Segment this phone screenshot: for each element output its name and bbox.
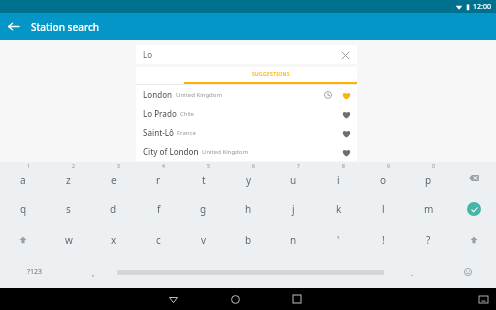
button[interactable]: Lo [136, 45, 357, 64]
button[interactable]: 9 [361, 162, 406, 193]
staticText: d [110, 202, 117, 216]
button[interactable]: v [181, 224, 226, 256]
button[interactable]: Space [117, 266, 384, 278]
button[interactable]: j [271, 193, 316, 224]
button[interactable]: Keyboard [470, 288, 496, 310]
button[interactable]: m [406, 193, 451, 224]
staticText: , [92, 267, 95, 278]
button[interactable]: Backspace [451, 162, 496, 193]
staticText: x [111, 233, 117, 247]
staticText: 9 [387, 163, 390, 170]
button[interactable]: c [136, 224, 181, 256]
staticText: Lo Prado [143, 108, 177, 119]
staticText: 3 [117, 163, 120, 170]
staticText: 4 [162, 163, 165, 170]
button[interactable]: f [136, 193, 181, 224]
staticText: a [20, 173, 26, 187]
button[interactable]: Enter [451, 193, 496, 224]
staticText: 8 [342, 163, 345, 170]
staticText: o [380, 173, 387, 187]
staticText: Saint-Lô [143, 127, 174, 138]
staticText: France [177, 129, 196, 137]
staticText: p [425, 173, 432, 187]
button[interactable]: Favorite [338, 144, 354, 160]
button[interactable]: London [136, 85, 357, 104]
button[interactable]: Clear [336, 46, 354, 64]
button[interactable]: Recents [266, 288, 328, 310]
button[interactable]: k [316, 193, 361, 224]
staticText: z [66, 173, 71, 187]
staticText: s [66, 202, 71, 216]
staticText: b [245, 233, 252, 247]
staticText: ? [426, 233, 431, 247]
staticText: h [245, 202, 252, 216]
button[interactable]: SUGGESTIONS [184, 67, 357, 84]
staticText: j [292, 202, 295, 216]
button[interactable]: 4 [136, 162, 181, 193]
staticText: m [424, 202, 434, 216]
button[interactable]: 5 [181, 162, 226, 193]
button[interactable]: City of London [136, 142, 357, 161]
staticText: y [246, 173, 252, 187]
button[interactable]: Back [142, 288, 204, 310]
staticText: ! [382, 233, 385, 247]
button[interactable]: Emoji [440, 256, 496, 288]
staticText: r [156, 173, 161, 187]
staticText: u [290, 173, 297, 187]
button[interactable]: Shift [0, 224, 46, 256]
staticText: Chile [180, 110, 194, 118]
button[interactable]: s [46, 193, 91, 224]
button[interactable]: 7 [271, 162, 316, 193]
button[interactable]: 2 [46, 162, 91, 193]
staticText: Station search [31, 20, 100, 34]
staticText: i [337, 173, 340, 187]
staticText: c [156, 233, 161, 247]
button[interactable]: Favorite [338, 106, 354, 122]
button[interactable]: 8 [316, 162, 361, 193]
button[interactable]: Favorite [338, 125, 354, 141]
staticText: City of London [143, 146, 199, 157]
button[interactable]: Home [204, 288, 266, 310]
staticText: 12:00 [473, 2, 491, 12]
button[interactable]: Lo Prado [136, 104, 357, 123]
button[interactable]: w [46, 224, 91, 256]
button[interactable]: 3 [91, 162, 136, 193]
button[interactable]: ? [406, 224, 451, 256]
staticText: v [201, 233, 207, 247]
button[interactable]: Back [0, 13, 27, 40]
staticText: q [20, 202, 27, 216]
button[interactable]: 6 [226, 162, 271, 193]
staticText: 6 [252, 163, 255, 170]
staticText: . [411, 267, 414, 278]
button[interactable]: l [361, 193, 406, 224]
button[interactable]: Shift [451, 224, 496, 256]
button[interactable]: h [226, 193, 271, 224]
staticText: g [200, 202, 207, 216]
button[interactable]: ! [361, 224, 406, 256]
button[interactable]: b [226, 224, 271, 256]
button[interactable]: 0 [406, 162, 451, 193]
staticText: l [382, 202, 385, 216]
button[interactable]: ?123 [0, 256, 70, 288]
staticText: Lo [143, 49, 153, 60]
button[interactable]: ' [316, 224, 361, 256]
button[interactable]: x [91, 224, 136, 256]
staticText: e [111, 173, 117, 187]
staticText: ' [337, 233, 340, 247]
button[interactable]: g [181, 193, 226, 224]
staticText: n [290, 233, 297, 247]
button[interactable]: Favorite [338, 87, 354, 103]
button[interactable]: n [271, 224, 316, 256]
staticText: 2 [72, 163, 75, 170]
staticText: 1 [27, 163, 30, 170]
button[interactable]: q [0, 193, 46, 224]
button[interactable]: Saint-Lô [136, 123, 357, 142]
staticText: 0 [432, 163, 435, 170]
button[interactable]: Recent [320, 87, 336, 103]
button[interactable]: 1 [0, 162, 46, 193]
staticText: f [157, 202, 161, 216]
staticText: SUGGESTIONS [252, 71, 290, 78]
button[interactable]: d [91, 193, 136, 224]
